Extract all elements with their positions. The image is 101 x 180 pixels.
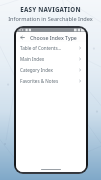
staticText: Choose Index Type [30, 34, 77, 41]
button[interactable]: Table of Contents... [16, 42, 86, 53]
button[interactable]: Favorites & Notes [16, 75, 86, 86]
staticText: Category Index [20, 67, 78, 73]
button[interactable]: Main Index [16, 53, 86, 64]
staticText: EASY NAVIGATION [20, 5, 81, 13]
staticText: Information in Searchable Index [8, 15, 93, 23]
staticText: Table of Contents... [20, 45, 78, 51]
button[interactable]: Back [19, 34, 26, 41]
staticText: Favorites & Notes [20, 78, 78, 84]
staticText: Main Index [20, 56, 78, 62]
button[interactable]: Category Index [16, 64, 86, 75]
